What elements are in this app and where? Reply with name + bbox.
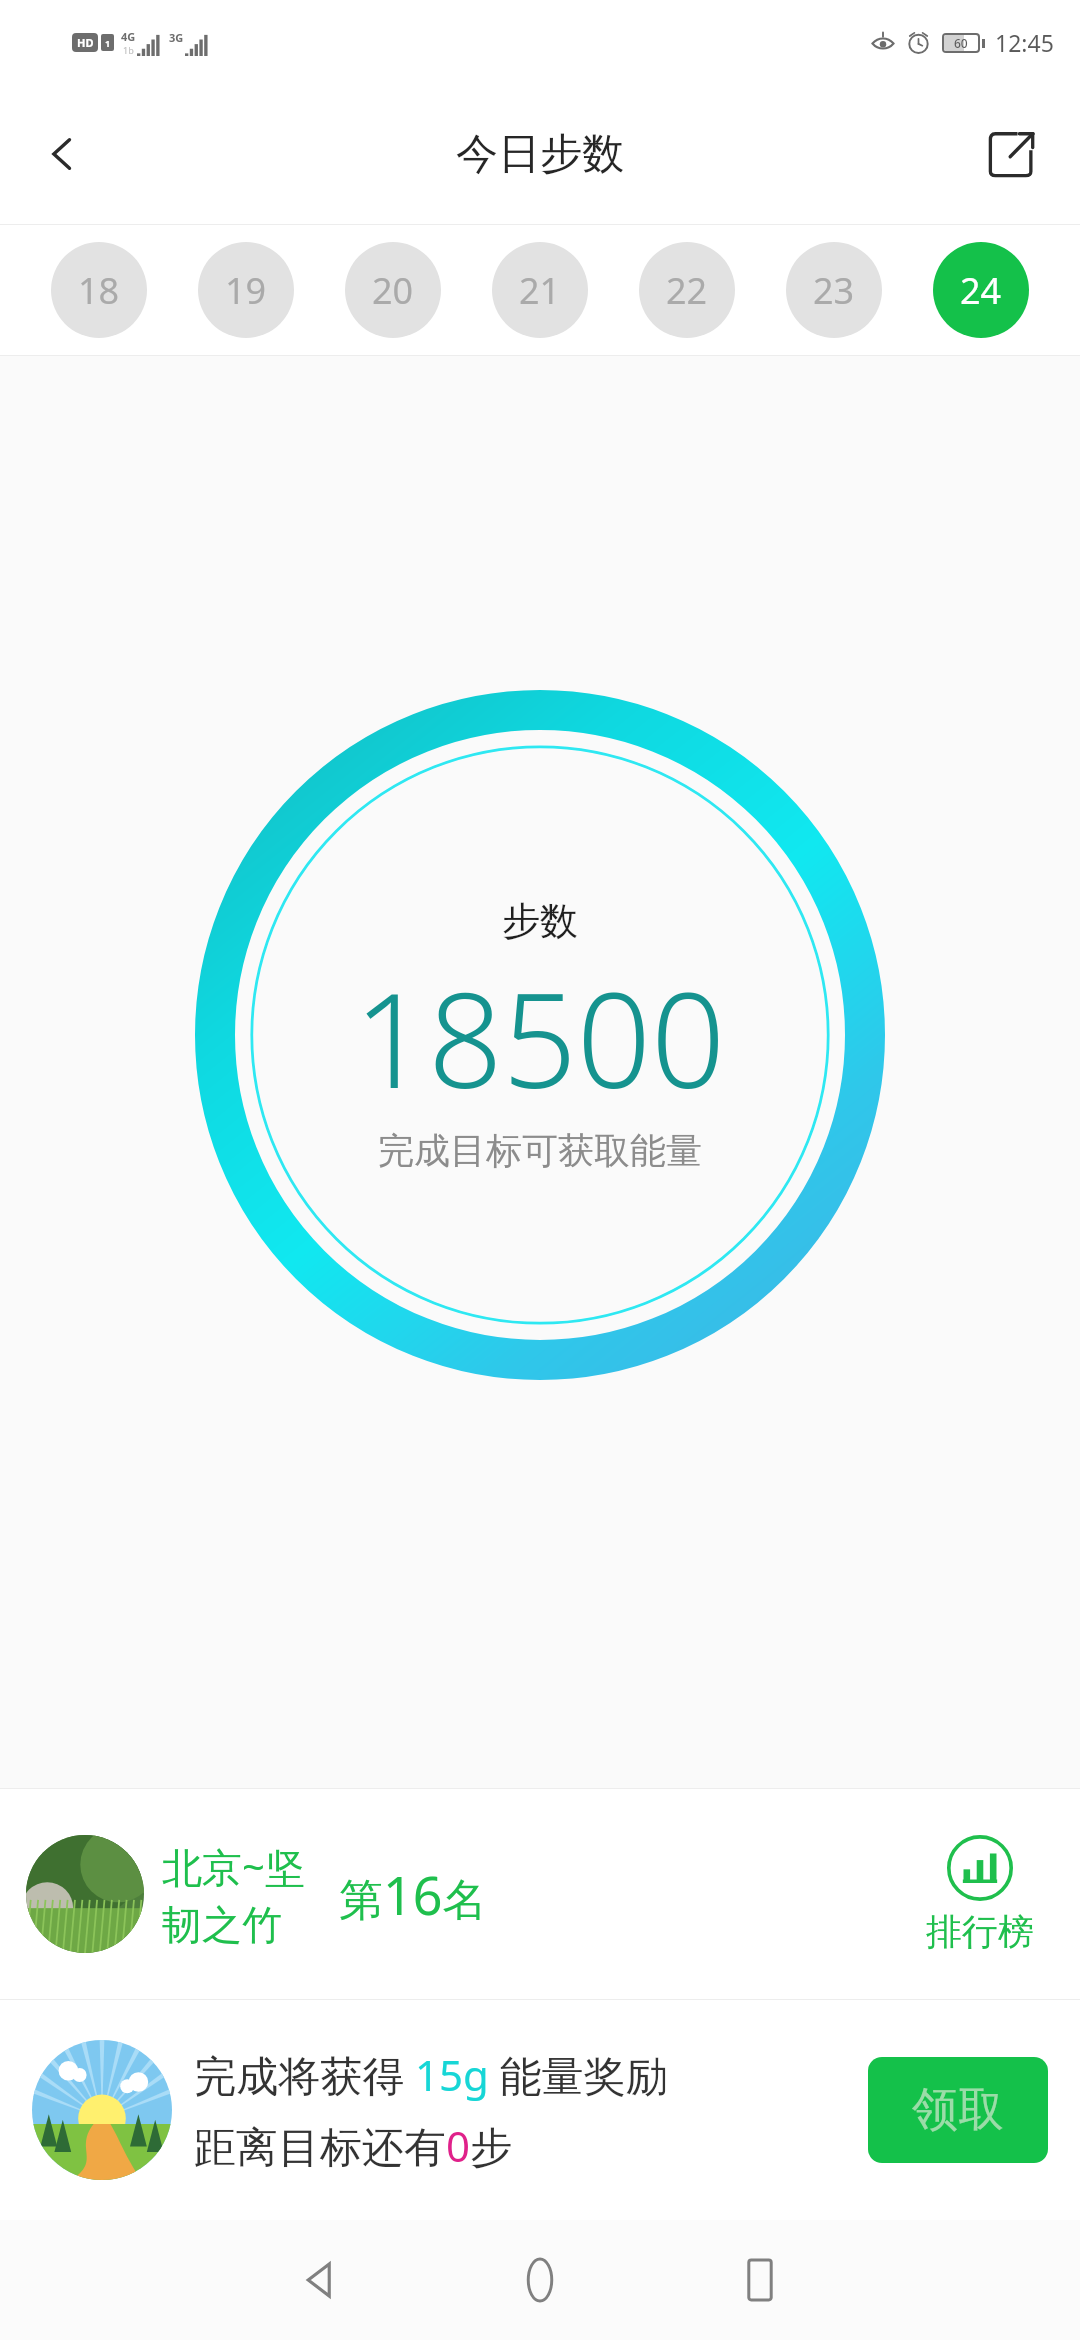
staticText: 3G <box>169 30 184 45</box>
staticText: 18500 <box>354 949 726 1126</box>
button[interactable]: 领取 <box>868 2057 1048 2163</box>
staticText: HD <box>77 35 94 50</box>
button[interactable]: 19 <box>198 242 294 338</box>
staticText: 北京~坚 <box>162 1839 305 1894</box>
staticText: 60 <box>954 35 968 51</box>
button[interactable]: Share <box>970 112 1054 196</box>
staticText: 1b <box>123 44 134 56</box>
staticText: 23 <box>813 266 855 315</box>
button[interactable]: 20 <box>345 242 441 338</box>
staticText: 领取 <box>912 2081 1004 2139</box>
staticText: 1 <box>105 37 111 49</box>
staticText: 20 <box>372 266 414 315</box>
button[interactable]: 21 <box>492 242 588 338</box>
staticText: 19 <box>225 266 267 315</box>
staticText: 21 <box>519 266 561 315</box>
staticText: 24 <box>960 266 1002 315</box>
button[interactable]: Back <box>22 114 102 194</box>
button[interactable]: 排行榜 <box>926 1835 1034 1954</box>
button[interactable]: 22 <box>639 242 735 338</box>
staticText: 完成将获得 15g 能量奖励 <box>194 2046 668 2103</box>
button[interactable]: Home <box>485 2225 595 2335</box>
button[interactable]: 24 <box>933 242 1029 338</box>
button[interactable]: Recents <box>705 2225 815 2335</box>
staticText: 距离目标还有0步 <box>194 2117 513 2174</box>
staticText: 韧之竹 <box>162 1900 282 1950</box>
staticText: 今日步数 <box>456 128 624 181</box>
staticText: 排行榜 <box>926 1909 1034 1954</box>
button[interactable]: 23 <box>786 242 882 338</box>
staticText: 步数 <box>502 897 578 945</box>
staticText: 完成目标可获取能量 <box>378 1128 702 1173</box>
staticText: 12:45 <box>995 27 1054 58</box>
button[interactable]: 18 <box>51 242 147 338</box>
staticText: 22 <box>666 266 708 315</box>
staticText: 第16名 <box>339 1859 487 1930</box>
button[interactable]: 北京~坚 <box>0 1789 1080 1999</box>
staticText: 4G <box>121 29 136 44</box>
button[interactable]: Back <box>265 2225 375 2335</box>
staticText: 18 <box>78 266 120 315</box>
